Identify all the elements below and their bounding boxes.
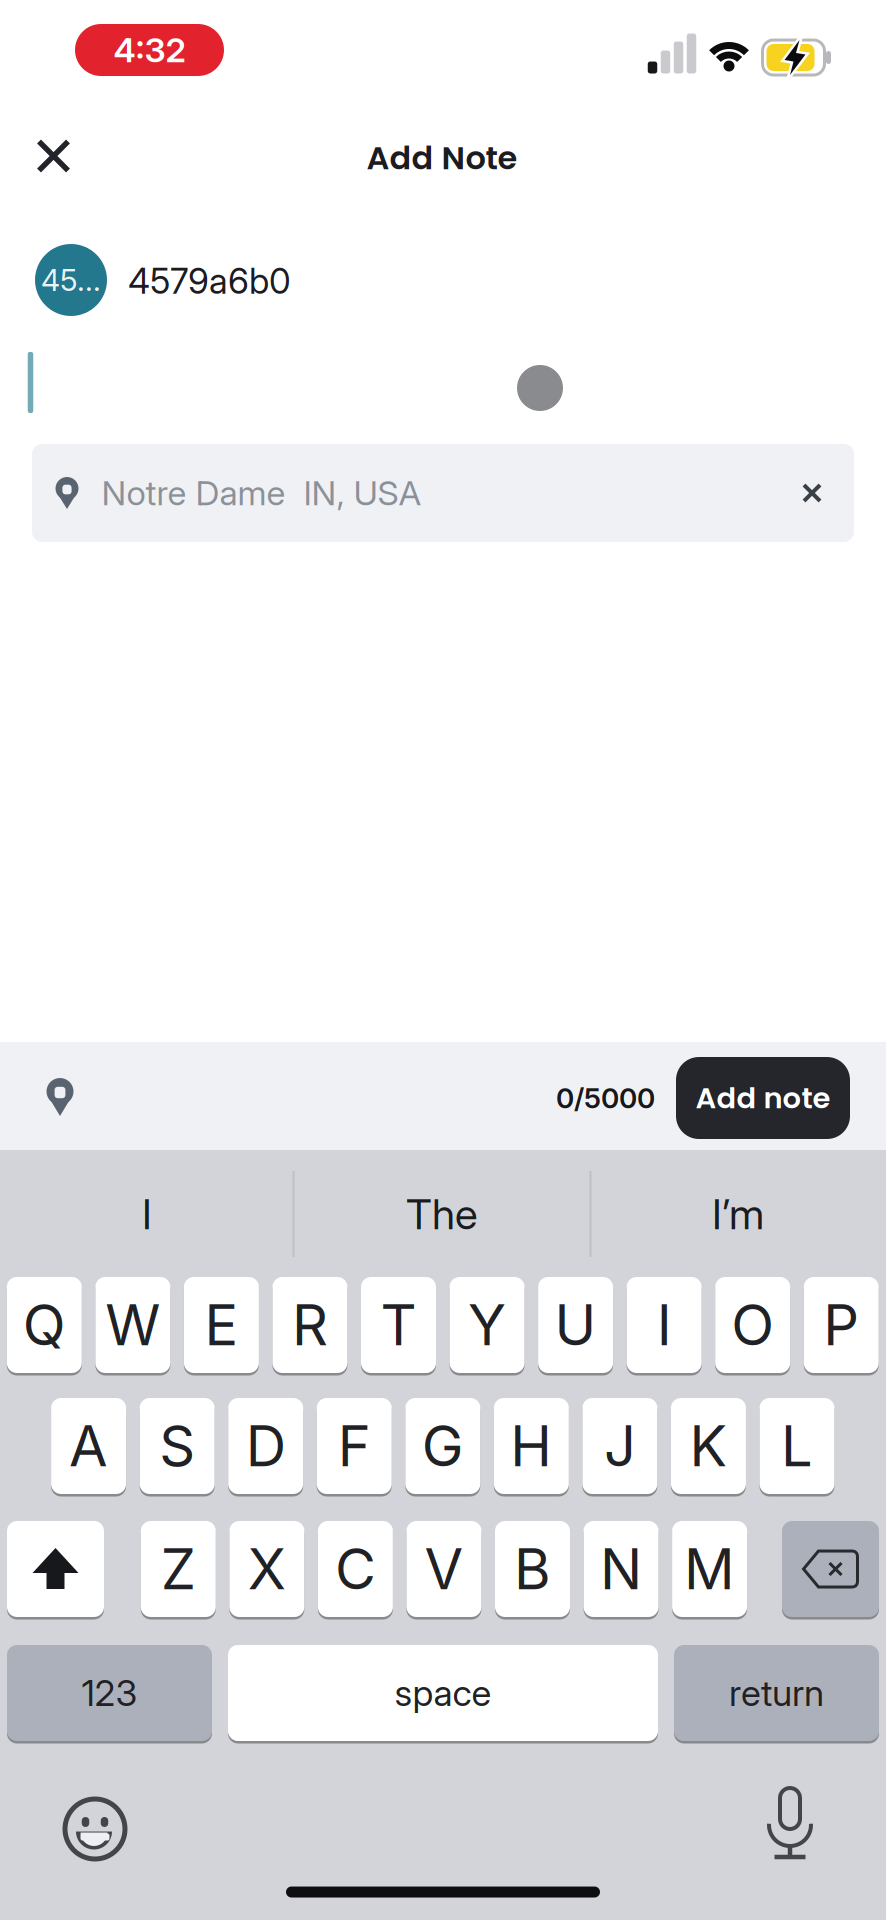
button[interactable]: A	[51, 1396, 126, 1495]
staticText: 123	[81, 1671, 137, 1715]
staticText: Add note	[695, 1078, 830, 1118]
button[interactable]	[782, 1519, 879, 1618]
staticText: 45...	[41, 262, 101, 298]
button[interactable]: P	[804, 1275, 879, 1374]
staticText: 4579a6b0	[128, 260, 291, 302]
staticText: T	[380, 1291, 416, 1359]
staticText: 4:32	[113, 29, 185, 70]
button[interactable]: F	[317, 1396, 392, 1495]
staticText: Add Note	[366, 136, 517, 180]
staticText: space	[394, 1671, 491, 1715]
button[interactable]: Z	[141, 1519, 216, 1618]
button[interactable]: I	[627, 1275, 702, 1374]
button[interactable]: U	[538, 1275, 613, 1374]
button[interactable]: S	[140, 1396, 215, 1495]
button[interactable]: Y	[450, 1275, 525, 1374]
staticText: D	[246, 1412, 286, 1480]
staticText: I	[657, 1291, 672, 1359]
button[interactable]: 123	[7, 1643, 212, 1742]
button[interactable]: V	[406, 1519, 481, 1618]
staticText: G	[422, 1412, 464, 1480]
staticText: P	[823, 1291, 859, 1359]
button[interactable]	[32, 1069, 88, 1125]
button[interactable]	[750, 1782, 830, 1872]
staticText: Notre Dame IN, USA	[101, 472, 421, 513]
button[interactable]: H	[494, 1396, 569, 1495]
button[interactable]	[55, 1789, 135, 1869]
staticText: return	[729, 1671, 824, 1715]
button[interactable]: D	[228, 1396, 303, 1495]
button[interactable]: I	[7, 1164, 287, 1264]
button[interactable]: L	[759, 1396, 834, 1495]
button[interactable]: K	[671, 1396, 746, 1495]
staticText: S	[159, 1412, 195, 1480]
staticText: A	[69, 1412, 108, 1480]
button[interactable]: J	[582, 1396, 657, 1495]
button[interactable]: Q	[7, 1275, 82, 1374]
button[interactable]	[23, 126, 83, 186]
button[interactable]: The	[302, 1164, 582, 1264]
button[interactable]: I’m	[598, 1164, 878, 1264]
staticText: J	[604, 1412, 636, 1480]
button[interactable]: N	[583, 1519, 658, 1618]
button[interactable]: B	[495, 1519, 570, 1618]
staticText: H	[510, 1412, 552, 1480]
button[interactable]: O	[715, 1275, 790, 1374]
staticText: Z	[161, 1535, 196, 1603]
button[interactable]: space	[228, 1643, 658, 1742]
staticText: W	[105, 1291, 160, 1359]
staticText: C	[335, 1535, 376, 1603]
staticText: I’m	[712, 1189, 764, 1239]
staticText: N	[600, 1535, 642, 1603]
button[interactable]: R	[272, 1275, 347, 1374]
button[interactable]: M	[672, 1519, 747, 1618]
staticText: M	[684, 1535, 735, 1603]
staticText: Y	[468, 1291, 506, 1359]
staticText: K	[689, 1412, 727, 1480]
staticText: V	[424, 1535, 463, 1603]
button[interactable]: W	[95, 1275, 170, 1374]
button[interactable]: 4:32	[75, 24, 224, 76]
staticText: E	[204, 1291, 238, 1359]
button[interactable]: Add note	[676, 1057, 850, 1139]
button[interactable]: T	[361, 1275, 436, 1374]
staticText: B	[514, 1535, 551, 1603]
button[interactable]: C	[318, 1519, 393, 1618]
button[interactable]: X	[229, 1519, 304, 1618]
button[interactable]: E	[184, 1275, 259, 1374]
staticText: I	[142, 1189, 152, 1239]
button[interactable]: G	[405, 1396, 480, 1495]
staticText: O	[731, 1291, 774, 1359]
staticText: 0/5000	[556, 1081, 655, 1115]
staticText: X	[248, 1535, 286, 1603]
staticText: R	[292, 1291, 328, 1359]
button[interactable]: return	[674, 1643, 879, 1742]
button[interactable]	[784, 465, 840, 521]
staticText: The	[406, 1189, 478, 1239]
staticText: F	[338, 1412, 371, 1480]
button[interactable]	[7, 1519, 104, 1618]
staticText: U	[555, 1291, 597, 1359]
staticText: Q	[23, 1291, 66, 1359]
staticText: L	[781, 1412, 813, 1480]
